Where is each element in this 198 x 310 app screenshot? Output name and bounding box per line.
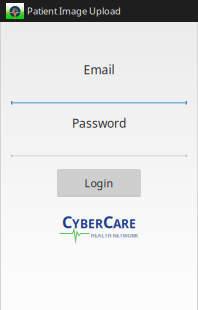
staticText: C — [103, 211, 113, 233]
staticText: HEALTH NETWORK — [90, 232, 138, 239]
staticText: C — [62, 211, 72, 233]
staticText: Login — [84, 176, 113, 190]
staticText: ARE — [113, 216, 136, 231]
staticText: Patient Image Upload — [27, 5, 121, 17]
staticText: YBER — [72, 216, 103, 231]
staticText: Password — [72, 115, 126, 131]
button[interactable]: Login — [57, 169, 141, 197]
staticText: Email — [83, 61, 114, 77]
